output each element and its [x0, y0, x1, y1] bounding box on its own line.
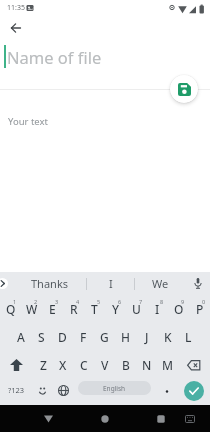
- button[interactable]: T: [84, 295, 105, 323]
- button[interactable]: Your text: [8, 115, 48, 128]
- staticText: We: [152, 276, 169, 291]
- staticText: E: [49, 301, 56, 317]
- staticText: Thanks: [31, 276, 69, 291]
- staticText: W: [26, 301, 38, 317]
- button[interactable]: J: [136, 323, 157, 351]
- button[interactable]: We: [135, 272, 186, 295]
- button[interactable]: [182, 411, 198, 427]
- staticText: N: [142, 357, 152, 373]
- staticText: A: [17, 329, 25, 345]
- button[interactable]: [38, 409, 58, 429]
- button[interactable]: [151, 409, 171, 429]
- button[interactable]: Name of file: [4, 45, 102, 68]
- staticText: 3: [55, 298, 59, 305]
- button[interactable]: R: [63, 295, 84, 323]
- staticText: X: [59, 357, 67, 373]
- staticText: Y: [112, 301, 120, 317]
- button[interactable]: N: [136, 351, 157, 379]
- button[interactable]: H: [115, 323, 136, 351]
- staticText: V: [101, 357, 109, 373]
- button[interactable]: [184, 381, 204, 401]
- staticText: 7: [139, 298, 143, 305]
- staticText: 6: [118, 298, 122, 305]
- button[interactable]: I: [87, 272, 134, 295]
- staticText: T: [91, 301, 98, 317]
- button[interactable]: ?123: [0, 379, 32, 405]
- button[interactable]: A: [11, 323, 31, 351]
- staticText: 4: [76, 298, 80, 305]
- button[interactable]: I: [147, 295, 168, 323]
- button[interactable]: English: [78, 381, 151, 395]
- button[interactable]: M: [157, 351, 178, 379]
- button[interactable]: W: [21, 295, 42, 323]
- button[interactable]: L: [178, 323, 199, 351]
- staticText: 5: [97, 298, 101, 305]
- button[interactable]: [0, 272, 14, 295]
- staticText: Z: [40, 357, 47, 373]
- staticText: J: [145, 329, 149, 345]
- staticText: H: [121, 329, 130, 345]
- button[interactable]: C: [73, 351, 94, 379]
- button[interactable]: Thanks: [14, 272, 86, 295]
- button[interactable]: K: [157, 323, 178, 351]
- button[interactable]: P: [189, 295, 210, 323]
- staticText: B: [122, 357, 130, 373]
- staticText: K: [164, 329, 172, 345]
- staticText: English: [103, 384, 126, 393]
- button[interactable]: Q: [0, 295, 21, 323]
- button[interactable]: [95, 409, 115, 429]
- button[interactable]: E: [42, 295, 63, 323]
- button[interactable]: G: [94, 323, 115, 351]
- staticText: ?123: [8, 385, 25, 395]
- staticText: Q: [6, 301, 16, 317]
- button[interactable]: X: [53, 351, 73, 379]
- staticText: 11:35: [7, 3, 25, 13]
- staticText: 8: [160, 298, 164, 305]
- button[interactable]: D: [52, 323, 73, 351]
- staticText: 1: [13, 298, 17, 305]
- staticText: 2: [34, 298, 38, 305]
- button[interactable]: V: [94, 351, 115, 379]
- button[interactable]: F: [73, 323, 94, 351]
- staticText: F: [80, 329, 87, 345]
- staticText: U: [132, 301, 141, 317]
- button[interactable]: Y: [105, 295, 126, 323]
- staticText: R: [70, 301, 78, 317]
- staticText: I: [109, 276, 113, 291]
- staticText: 9: [181, 298, 185, 305]
- staticText: I: [155, 301, 160, 317]
- button[interactable]: Z: [33, 351, 53, 379]
- staticText: P: [196, 301, 204, 317]
- staticText: C: [80, 357, 88, 373]
- button[interactable]: S: [31, 323, 52, 351]
- button[interactable]: O: [168, 295, 189, 323]
- button[interactable]: [170, 75, 198, 103]
- button[interactable]: [32, 379, 53, 405]
- button[interactable]: U: [126, 295, 147, 323]
- staticText: G: [100, 329, 109, 345]
- staticText: Name of file: [7, 46, 102, 68]
- button[interactable]: [186, 272, 210, 295]
- button[interactable]: [178, 351, 210, 379]
- staticText: S: [38, 329, 45, 345]
- button[interactable]: [5, 17, 26, 38]
- staticText: 0: [202, 298, 206, 305]
- staticText: O: [174, 301, 184, 317]
- staticText: D: [58, 329, 67, 345]
- button[interactable]: [155, 379, 177, 405]
- button[interactable]: [53, 379, 74, 405]
- staticText: M: [162, 357, 174, 373]
- staticText: L: [185, 329, 192, 345]
- button[interactable]: B: [115, 351, 136, 379]
- button[interactable]: [0, 351, 33, 379]
